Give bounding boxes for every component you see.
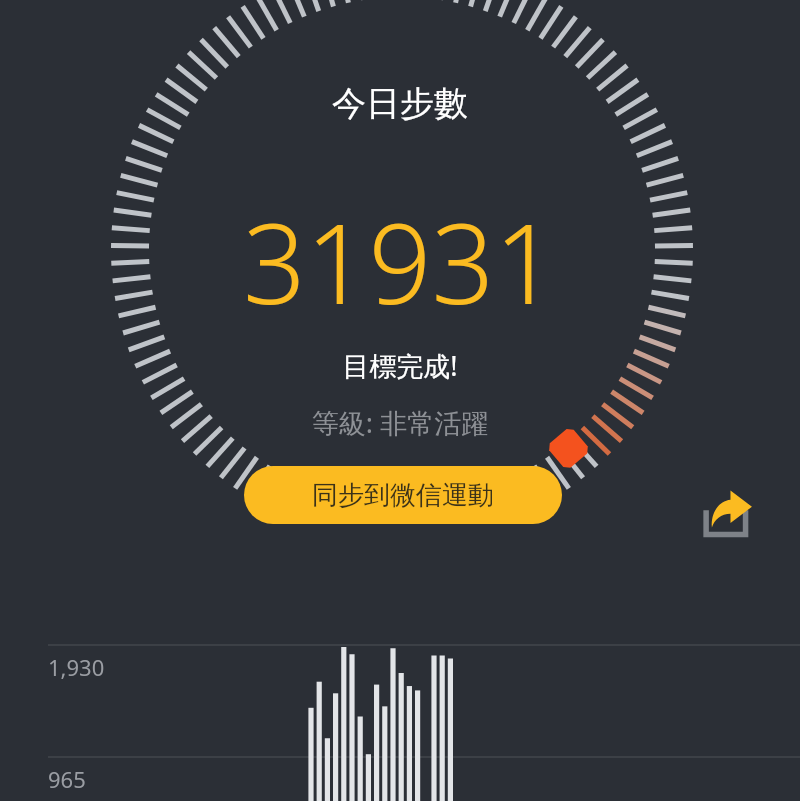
staticText: 965 [48, 764, 86, 794]
staticText: 1,930 [48, 652, 105, 682]
staticText: 同步到微信運動 [312, 479, 494, 512]
staticText: 今日步數 [0, 82, 800, 801]
staticText: 目標完成! [0, 347, 800, 801]
staticText: 31931 [0, 186, 800, 801]
button[interactable]: Share [698, 487, 756, 545]
button[interactable]: 同步到微信運動 [244, 466, 562, 524]
staticText: 等級: 非常活躍 [0, 404, 800, 801]
